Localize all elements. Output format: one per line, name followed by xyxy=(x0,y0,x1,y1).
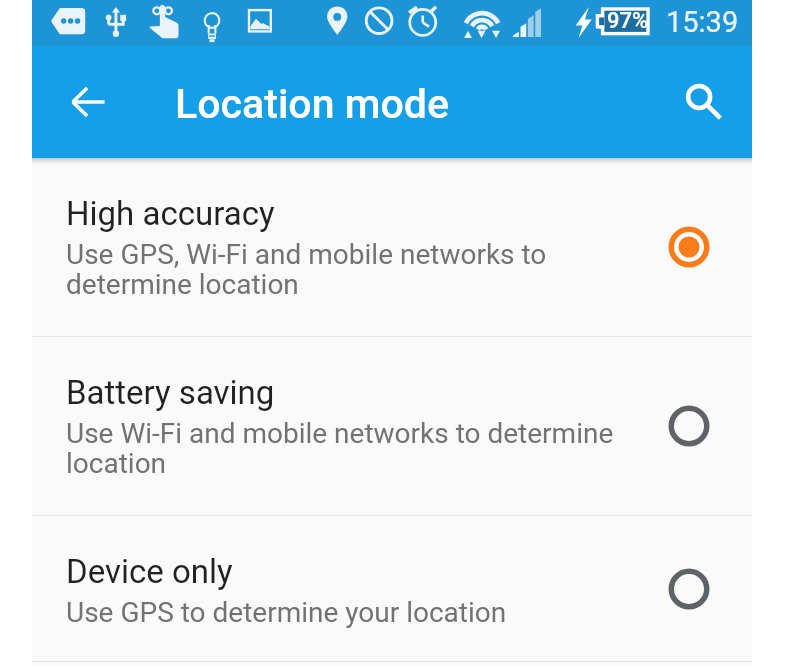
staticText: Use GPS, Wi-Fi and mobile networks to de… xyxy=(66,240,628,300)
button[interactable]: Battery saving xyxy=(32,337,752,515)
staticText: Location mode xyxy=(175,83,449,127)
button[interactable]: Search xyxy=(662,46,746,158)
button[interactable]: Navigate up xyxy=(46,46,130,158)
button[interactable]: Device only xyxy=(32,516,752,661)
staticText: 15:39 xyxy=(666,7,739,39)
staticText: Use GPS to determine your location xyxy=(66,598,507,628)
staticText: High accuracy xyxy=(66,169,275,240)
staticText: Battery saving xyxy=(66,348,275,419)
staticText: Device only xyxy=(66,527,233,598)
button[interactable]: High accuracy xyxy=(32,158,752,336)
staticText: Use Wi-Fi and mobile networks to determi… xyxy=(66,419,628,479)
staticText: 97% xyxy=(607,10,649,33)
